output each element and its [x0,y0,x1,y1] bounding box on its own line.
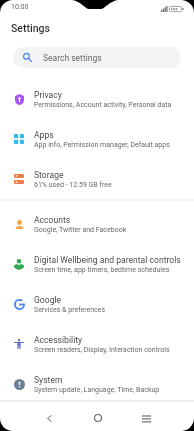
button[interactable]: Accessibility [0,324,194,364]
staticText: Google [34,295,62,305]
button[interactable]: Search settings [13,47,181,68]
staticText: Apps [34,130,54,140]
staticText: System [34,375,63,385]
button[interactable]: Privacy [0,79,194,119]
button[interactable]: Accounts [0,204,194,244]
staticText: Accessibility [34,335,83,345]
staticText: Permissions, Account activity, Personal … [34,101,172,109]
button[interactable]: Storage [0,159,194,199]
staticText: Google, Twitter and Facebook [34,226,127,234]
staticText: Search settings [43,53,102,63]
staticText: Screen time, app timers, bedtime schedul… [34,266,170,274]
staticText: Privacy [34,90,62,100]
staticText: 10:00 [11,3,29,11]
staticText: 61% used - 12.59 GB free [34,181,112,189]
staticText: Storage [34,170,64,180]
button[interactable]: Recent apps [134,406,158,430]
button[interactable]: Home [86,406,110,430]
staticText: Settings [11,22,50,34]
button[interactable]: Digital Wellbeing and parental controls [0,244,194,284]
button[interactable]: Apps [0,119,194,159]
staticText: Digital Wellbeing and parental controls [34,255,181,265]
button[interactable]: Back [37,406,61,430]
staticText: Accounts [34,215,71,225]
button[interactable]: System [0,364,194,404]
staticText: System update, Language, Time, Backup [34,386,160,394]
staticText: Services & preferences [34,306,106,314]
staticText: Screen readers, Display, Interaction con… [34,346,170,354]
button[interactable]: Google [0,284,194,324]
staticText: App info, Permission manager, Default ap… [34,141,170,149]
